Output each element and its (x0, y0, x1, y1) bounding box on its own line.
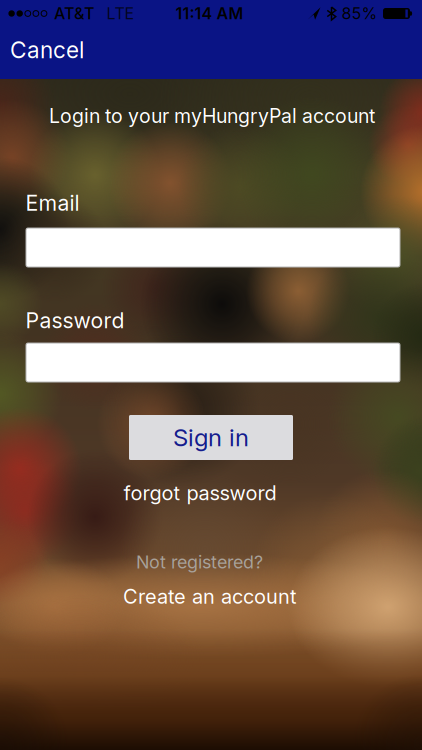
staticText: Email (25, 190, 79, 216)
staticText: 11:14 AM (175, 4, 243, 23)
button[interactable]: Password (26, 343, 400, 382)
staticText: Create an account (123, 585, 297, 608)
button[interactable]: Email (26, 228, 400, 267)
staticText: 85% (341, 4, 377, 23)
staticText: Not registered? (136, 551, 263, 573)
staticText: Cancel (10, 37, 84, 63)
button[interactable]: Sign in (129, 415, 293, 460)
staticText: forgot password (123, 481, 276, 505)
staticText: LTE (106, 4, 134, 23)
staticText: Login to your myHungryPal account (49, 104, 375, 128)
staticText: AT&T (54, 4, 94, 23)
staticText: Password (25, 308, 124, 333)
button[interactable]: Create an account (123, 585, 297, 608)
button[interactable]: Cancel (10, 37, 84, 63)
staticText: Sign in (173, 423, 249, 452)
button[interactable]: forgot password (123, 481, 276, 505)
